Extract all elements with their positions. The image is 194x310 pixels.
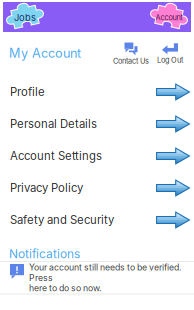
staticText: Profile [10, 85, 45, 99]
button[interactable]: Account [149, 2, 189, 32]
button[interactable]: Account Settings [0, 140, 194, 172]
staticText: Account [155, 13, 182, 22]
staticText: Account Settings [10, 149, 102, 163]
staticText: Contact Us [113, 57, 149, 65]
staticText: Safety and Security [10, 213, 114, 227]
button[interactable]: Privacy Policy [0, 172, 194, 204]
staticText: Jobs [14, 12, 36, 23]
staticText: Your account still needs to be verified.… [29, 262, 181, 293]
button[interactable]: Safety and Security [0, 204, 194, 236]
button[interactable]: Personal Details [0, 108, 194, 140]
staticText: Privacy Policy [10, 181, 83, 195]
staticText: My Account [9, 46, 81, 61]
button[interactable]: Contact Us [109, 43, 153, 65]
button[interactable]: Your account still needs to be verified.… [0, 262, 194, 293]
button[interactable]: Log Out [153, 43, 187, 64]
button[interactable]: Profile [0, 76, 194, 108]
button[interactable]: Jobs [5, 2, 45, 32]
staticText: Notifications [9, 247, 80, 261]
staticText: Log Out [157, 56, 183, 64]
staticText: Personal Details [10, 117, 97, 131]
